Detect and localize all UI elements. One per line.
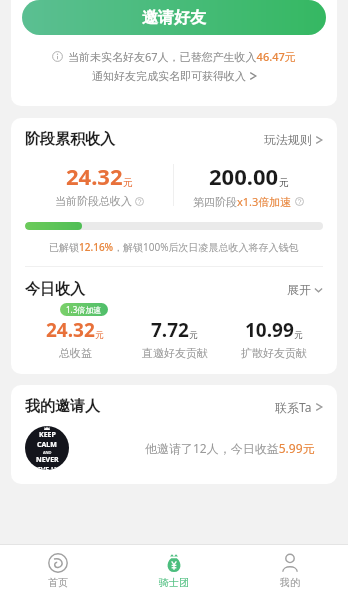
- staticText: 第四阶段x1.3倍加速: [193, 194, 292, 209]
- staticText: 我的: [280, 576, 300, 589]
- staticText: 骑士团: [159, 576, 189, 589]
- button[interactable]: 当前未实名好友67人，已替您产生收入46.47元: [52, 49, 296, 64]
- staticText: 玩法规则: [264, 132, 312, 147]
- button[interactable]: 展开: [287, 282, 323, 297]
- button[interactable]: 通知好友完成实名即可获得收入: [92, 69, 257, 83]
- button[interactable]: 首页: [0, 545, 116, 597]
- staticText: NEVER: [36, 455, 59, 465]
- staticText: 直邀好友贡献: [142, 346, 208, 360]
- staticText: 10.99: [245, 317, 294, 343]
- staticText: CALM: [37, 440, 57, 450]
- button[interactable]: 骑士团: [116, 545, 232, 597]
- staticText: 当前阶段总收入: [55, 194, 132, 208]
- staticText: 7.72: [151, 317, 189, 343]
- staticText: 已解锁12.16%，解锁100%后次日凌晨总收入将存入钱包: [49, 240, 299, 254]
- staticText: 当前未实名好友67人，已替您产生收入46.47元: [68, 49, 296, 64]
- button[interactable]: 我的: [232, 545, 348, 597]
- staticText: 总收益: [59, 346, 92, 360]
- button[interactable]: 邀请好友: [22, 0, 326, 35]
- other: 首页: [48, 553, 68, 573]
- button[interactable]: 联系Ta: [275, 399, 323, 415]
- staticText: 阶段累积收入: [25, 130, 115, 149]
- staticText: 首页: [48, 576, 68, 589]
- staticText: 我的邀请人: [25, 397, 100, 416]
- staticText: 200.00: [209, 161, 279, 191]
- staticText: 联系Ta: [275, 399, 312, 415]
- staticText: 展开: [287, 282, 311, 297]
- staticText: 元: [189, 330, 198, 341]
- other: 骑士团: [164, 553, 184, 573]
- staticText: 他邀请了12人，今日收益5.99元: [145, 440, 315, 456]
- button[interactable]: 玩法规则: [264, 132, 323, 147]
- staticText: 元: [123, 176, 133, 188]
- staticText: KEEP: [39, 430, 56, 440]
- staticText: 24.32: [66, 161, 123, 191]
- staticText: 扩散好友贡献: [241, 346, 307, 360]
- staticText: 24.32: [46, 317, 95, 343]
- staticText: GIVE UP: [33, 465, 61, 470]
- staticText: 通知好友完成实名即可获得收入: [92, 69, 246, 83]
- staticText: 元: [95, 330, 104, 341]
- staticText: 1.3倍加速: [66, 304, 102, 315]
- staticText: 邀请好友: [142, 8, 206, 28]
- staticText: 元: [279, 176, 289, 188]
- staticText: 元: [294, 330, 303, 341]
- staticText: 今日收入: [25, 280, 85, 299]
- staticText: AND: [43, 450, 52, 455]
- other: 我的: [280, 553, 300, 573]
